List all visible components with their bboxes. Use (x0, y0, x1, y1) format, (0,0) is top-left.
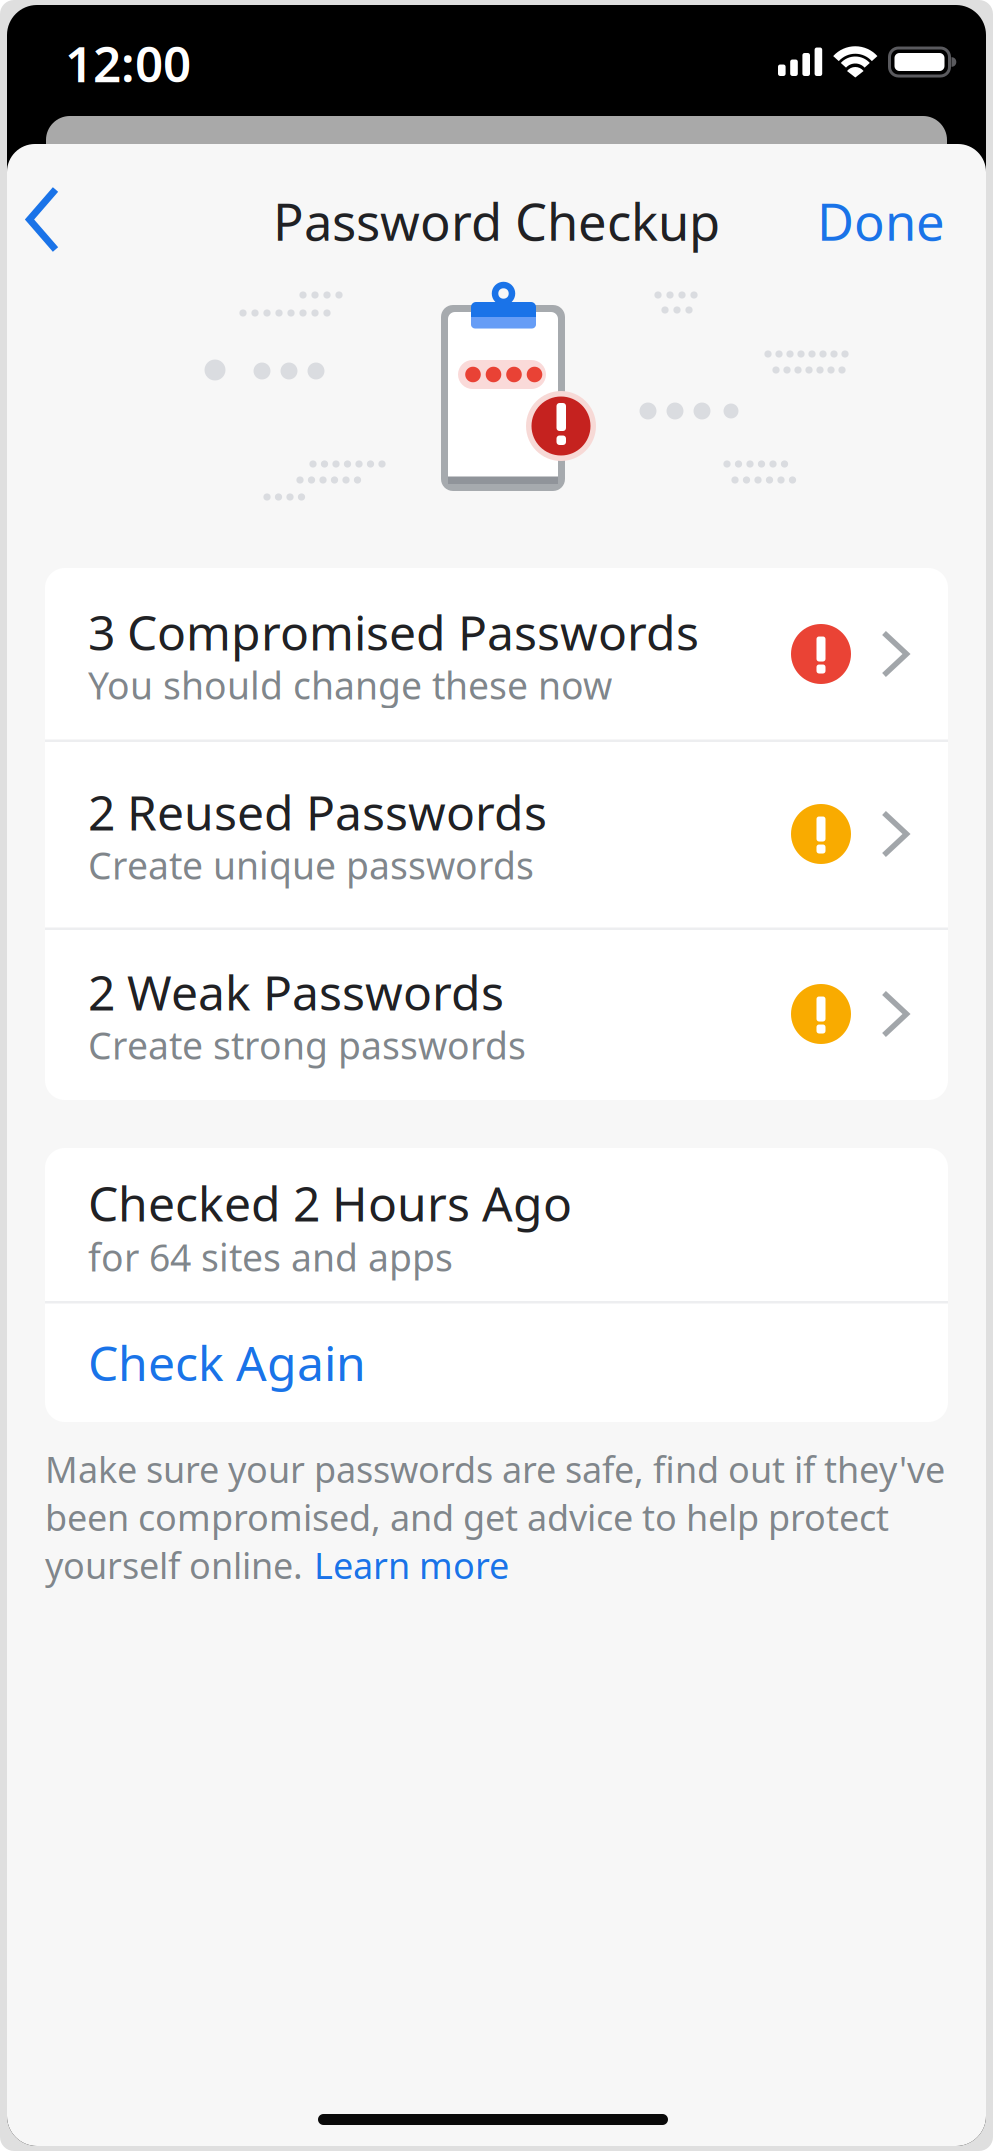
staticText: Password Checkup (273, 187, 720, 255)
staticText: Create unique passwords (88, 840, 534, 890)
staticText: for 64 sites and apps (88, 1232, 453, 1282)
staticText: 2 Weak Passwords (88, 960, 504, 1024)
staticText: You should change these now (88, 660, 612, 710)
button[interactable]: Check Again (45, 1303, 948, 1422)
staticText: Checked 2 Hours Ago (88, 1171, 572, 1235)
button[interactable]: 3 Compromised Passwords (45, 568, 948, 740)
button[interactable]: Done (725, 181, 945, 261)
button[interactable]: Learn more (314, 1541, 509, 1589)
staticText: 12:00 (65, 30, 191, 96)
staticText: Make sure your passwords are safe, find … (45, 1445, 945, 1493)
staticText: Done (817, 187, 945, 255)
staticText: yourself online. (45, 1541, 303, 1589)
staticText: been compromised, and get advice to help… (45, 1493, 889, 1541)
staticText: Create strong passwords (88, 1020, 526, 1070)
staticText: 2 Reused Passwords (88, 780, 547, 844)
staticText: 3 Compromised Passwords (88, 600, 699, 664)
staticText: Learn more (314, 1541, 509, 1589)
button[interactable]: 2 Reused Passwords (45, 740, 948, 928)
button[interactable]: 2 Weak Passwords (45, 928, 948, 1100)
staticText: Check Again (88, 1331, 366, 1394)
button[interactable]: Back (12, 179, 72, 260)
